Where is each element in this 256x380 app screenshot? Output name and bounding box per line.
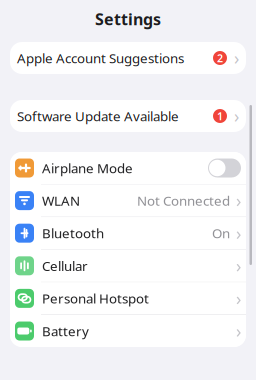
staticText: 1 [217,109,223,123]
staticText: Airplane Mode [42,159,133,177]
button[interactable]: Airplane Mode [208,158,241,177]
button[interactable]: Software Update Available [10,100,246,132]
button[interactable]: WLAN [10,185,246,217]
staticText: Not Connected [137,192,230,209]
button[interactable]: Airplane Mode [10,152,246,184]
button[interactable]: Apple Account Suggestions [10,42,246,74]
staticText: › [236,287,241,310]
staticText: › [236,254,241,277]
staticText: Battery [42,322,89,340]
staticText: Cellular [42,257,88,275]
button[interactable]: Bluetooth [10,217,246,249]
staticText: 2 [217,51,223,65]
staticText: › [236,319,241,342]
button[interactable]: Battery [10,315,246,347]
button[interactable]: Personal Hotspot [10,282,246,314]
staticText: Software Update Available [17,107,179,125]
staticText: › [236,189,241,212]
staticText: On [212,224,230,242]
staticText: Settings [95,8,161,30]
staticText: › [234,104,239,127]
staticText: Apple Account Suggestions [17,49,184,67]
staticText: Bluetooth [42,224,104,242]
button[interactable]: Cellular [10,250,246,282]
staticText: › [236,222,241,245]
staticText: › [234,46,239,69]
staticText: Personal Hotspot [42,289,149,307]
staticText: WLAN [42,192,80,209]
